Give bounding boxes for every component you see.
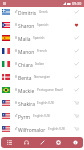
staticText: Italian: [35, 62, 74, 66]
button[interactable]: Pyrm: [0, 111, 84, 124]
staticText: Mackie: [18, 88, 35, 95]
staticText: English (US): [33, 114, 74, 118]
staticText: English (US): [48, 127, 74, 131]
staticText: Spanish: [33, 36, 74, 40]
staticText: Maila: [18, 36, 31, 43]
button[interactable]: List: [1, 137, 17, 148]
staticText: Pyrm: [18, 114, 31, 121]
staticText: Benta: [18, 75, 32, 82]
staticText: Shakira: [18, 101, 35, 108]
staticText: English (US): [37, 101, 74, 105]
staticText: Portuguese Brazil: [37, 88, 74, 92]
staticText: Chiara: [18, 62, 33, 69]
button[interactable]: Dimitris: [0, 7, 84, 20]
button[interactable]: Settings: [50, 137, 66, 148]
staticText: 09:30: [72, 1, 82, 6]
staticText: Norwegian: [34, 75, 74, 79]
staticText: Sharon: [18, 23, 35, 30]
button[interactable]: Audio: [18, 137, 34, 148]
button[interactable]: Maila: [0, 33, 84, 46]
button[interactable]: Menu: [1, 0, 8, 7]
staticText: Manon: [18, 49, 35, 56]
button[interactable]: Sharon: [0, 20, 84, 33]
button[interactable]: Manon: [0, 46, 84, 59]
staticText: Dimitris: [18, 10, 37, 17]
button[interactable]: Chiara: [0, 59, 84, 72]
button[interactable]: Help: [67, 137, 83, 148]
staticText: Greek: [39, 10, 74, 14]
button[interactable]: Wilfromalor: [0, 124, 84, 137]
staticText: French: [37, 49, 74, 53]
button[interactable]: Edit: [34, 137, 50, 148]
button[interactable]: Shakira: [0, 98, 84, 111]
staticText: Wilfromalor: [18, 127, 46, 134]
button[interactable]: Benta: [0, 72, 84, 85]
button[interactable]: Mackie: [0, 85, 84, 98]
staticText: Spanish: [37, 23, 74, 27]
